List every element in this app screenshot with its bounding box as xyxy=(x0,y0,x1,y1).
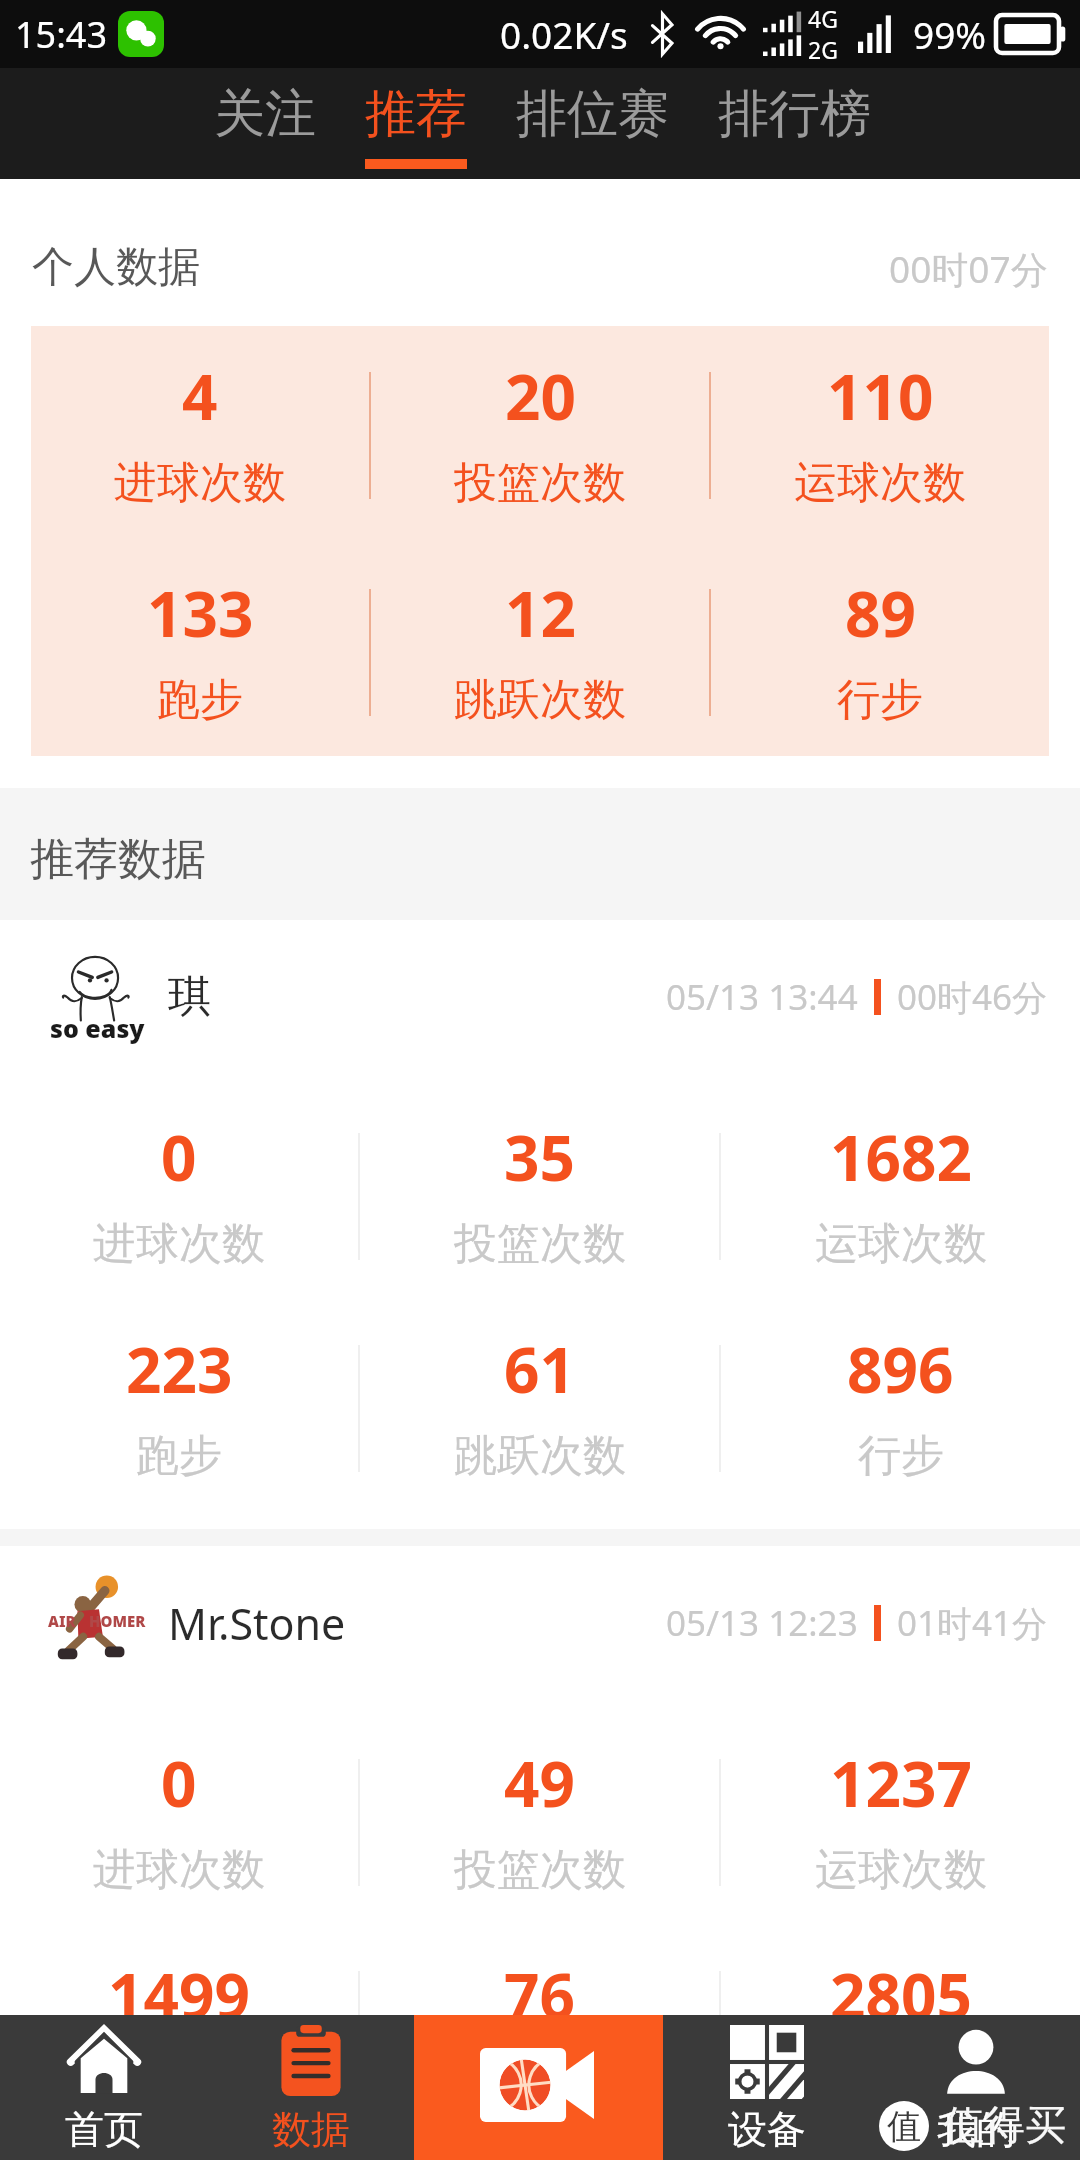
button[interactable]: 推荐 xyxy=(365,68,467,169)
staticText: 00时46分 xyxy=(897,973,1048,1021)
staticText: 跳跃次数 xyxy=(454,2055,626,2109)
staticText: AIR xyxy=(48,1611,76,1631)
button[interactable]: 数据 xyxy=(207,2015,414,2160)
button[interactable]: Record video xyxy=(414,2015,663,2160)
button[interactable]: 我的 xyxy=(871,2015,1080,2160)
staticText: 99% xyxy=(913,9,987,59)
staticText: 进球次数 xyxy=(114,456,286,510)
staticText: so easy xyxy=(50,1011,145,1045)
staticText: 110 xyxy=(827,354,934,438)
staticText: 15:43 xyxy=(15,10,108,59)
staticText: 首页 xyxy=(65,2105,143,2154)
staticText: 1499 xyxy=(108,1953,250,2037)
staticText: 进球次数 xyxy=(93,1217,265,1271)
staticText: 0 xyxy=(161,1115,197,1199)
staticText: 跑步 xyxy=(136,2055,222,2109)
staticText: 76 xyxy=(504,1953,575,2037)
staticText: 133 xyxy=(147,571,254,655)
staticText: 值 xyxy=(887,2105,921,2148)
button[interactable]: 排位赛 xyxy=(516,68,669,159)
staticText: 49 xyxy=(504,1741,575,1825)
staticText: 推荐 xyxy=(365,82,467,146)
staticText: 2G xyxy=(808,34,838,65)
staticText: 关注 xyxy=(214,82,316,146)
staticText: 进球次数 xyxy=(93,1843,265,1897)
staticText: 跑步 xyxy=(136,1429,222,1483)
staticText: 投篮次数 xyxy=(454,456,626,510)
staticText: 跳跃次数 xyxy=(454,1429,626,1483)
staticText: 61 xyxy=(504,1327,575,1411)
staticText: HOMER xyxy=(89,1611,146,1631)
staticText: 排行榜 xyxy=(718,82,871,146)
staticText: 4G xyxy=(808,3,838,34)
staticText: 896 xyxy=(847,1327,954,1411)
staticText: 跳跃次数 xyxy=(454,673,626,727)
staticText: 01时41分 xyxy=(897,1599,1048,1647)
staticText: 4 xyxy=(182,354,218,438)
button[interactable]: 排行榜 xyxy=(718,68,871,159)
staticText: 0 xyxy=(161,1741,197,1825)
staticText: 运球次数 xyxy=(815,1217,987,1271)
staticText: 推荐数据 xyxy=(30,832,206,887)
staticText: 1682 xyxy=(830,1115,972,1199)
staticText: 琪 xyxy=(168,970,211,1024)
staticText: 223 xyxy=(126,1327,233,1411)
staticText: 设备 xyxy=(728,2105,806,2154)
button[interactable]: 关注 xyxy=(214,68,316,159)
staticText: 35 xyxy=(504,1115,575,1199)
staticText: 行步 xyxy=(837,673,923,727)
staticText: 我的 xyxy=(937,2105,1015,2154)
staticText: Mr.Stone xyxy=(168,1594,346,1653)
button[interactable]: so easy xyxy=(0,920,1080,1529)
button[interactable]: AIR xyxy=(0,1546,1080,2155)
staticText: 跑步 xyxy=(157,673,243,727)
staticText: 排位赛 xyxy=(516,82,669,146)
staticText: 个人数据 xyxy=(32,241,200,294)
staticText: 行步 xyxy=(858,1429,944,1483)
staticText: 05/13 12:23 xyxy=(666,1599,858,1647)
staticText: 值得买 xyxy=(943,2100,1066,2152)
staticText: 89 xyxy=(845,571,916,655)
staticText: 投篮次数 xyxy=(454,1843,626,1897)
staticText: 运球次数 xyxy=(815,1843,987,1897)
staticText: 数据 xyxy=(272,2105,350,2154)
staticText: 0.02K/s xyxy=(500,9,628,59)
button[interactable]: 首页 xyxy=(0,2015,207,2160)
staticText: 2805 xyxy=(830,1953,972,2037)
button[interactable]: 设备 xyxy=(663,2015,871,2160)
staticText: 12 xyxy=(505,571,576,655)
staticText: 运球次数 xyxy=(794,456,966,510)
staticText: 05/13 13:44 xyxy=(666,973,858,1021)
staticText: 20 xyxy=(505,354,576,438)
staticText: 行步 xyxy=(858,2055,944,2109)
staticText: 投篮次数 xyxy=(454,1217,626,1271)
staticText: 00时07分 xyxy=(889,243,1048,294)
staticText: 1237 xyxy=(830,1741,972,1825)
